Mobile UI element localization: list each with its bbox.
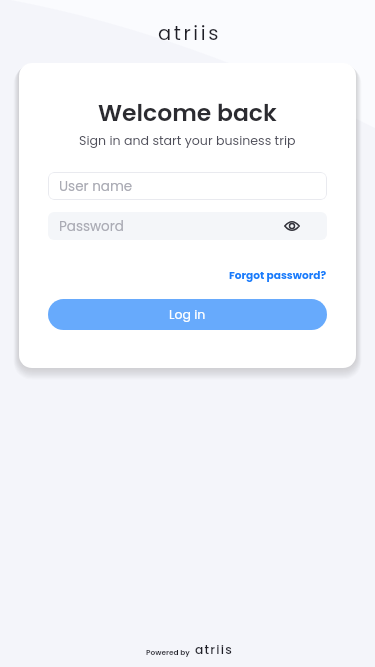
staticText: Log in [169,306,206,323]
button[interactable]: User name [48,172,327,200]
staticText: Powered by [146,647,190,657]
button[interactable]: Show password [280,214,304,238]
staticText: atriis [195,641,233,658]
button[interactable]: Forgot password? [229,268,327,283]
button[interactable]: Log in [48,299,327,330]
staticText: User name [59,177,133,196]
staticText: atriis [158,20,221,47]
button[interactable]: Password [48,212,327,240]
staticText: Forgot password? [229,268,327,283]
staticText: Welcome back [98,96,277,129]
staticText: Password [59,217,124,236]
staticText: Sign in and start your business trip [79,132,296,150]
